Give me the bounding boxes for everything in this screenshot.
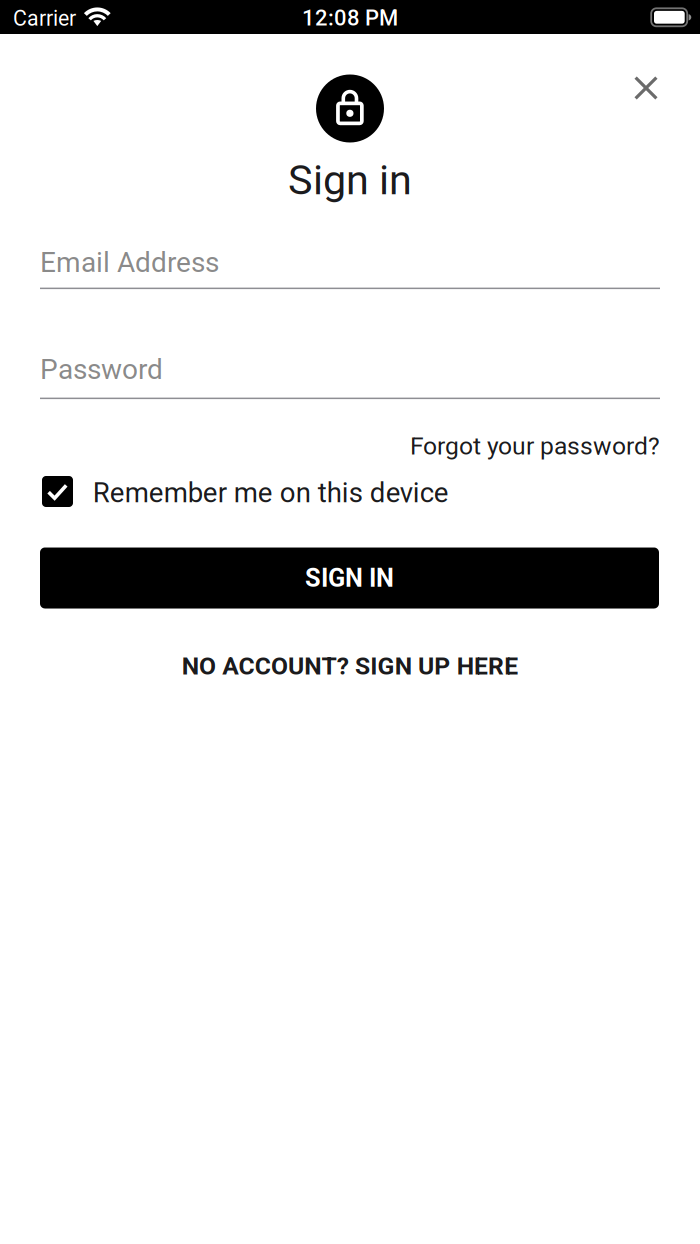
staticText: Forgot your password? xyxy=(410,431,660,460)
staticText: NO ACCOUNT? SIGN UP HERE xyxy=(182,651,518,680)
button[interactable]: Close xyxy=(622,64,670,112)
button[interactable]: NO ACCOUNT? SIGN UP HERE xyxy=(0,651,700,681)
button[interactable]: Remember me on this device xyxy=(42,476,662,508)
staticText: 12:08 PM xyxy=(302,5,398,31)
staticText: Sign in xyxy=(288,156,412,204)
staticText: Email Address xyxy=(40,246,219,279)
button[interactable]: SIGN IN xyxy=(40,547,659,608)
staticText: Password xyxy=(40,353,163,386)
staticText: SIGN IN xyxy=(305,563,394,593)
staticText: Remember me on this device xyxy=(93,477,449,509)
button[interactable]: Forgot your password? xyxy=(40,432,660,460)
staticText: Carrier xyxy=(13,6,76,31)
